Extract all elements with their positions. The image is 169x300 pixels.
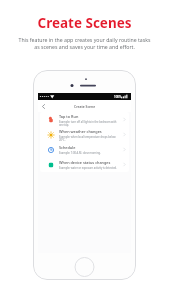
- staticText: Tap to Run: [59, 114, 79, 119]
- staticText: When device status changes: [59, 160, 111, 165]
- staticText: Create Scenes: [37, 14, 132, 32]
- button[interactable]: Schedule: [40, 142, 129, 157]
- staticText: Create Scene: [74, 104, 96, 109]
- staticText: 100%: [114, 95, 122, 99]
- staticText: Example: water or exposure activity is d…: [59, 166, 117, 170]
- button[interactable]: When device status changes: [40, 157, 129, 172]
- button[interactable]: When weather changes: [40, 127, 129, 142]
- staticText: Schedule: [59, 145, 76, 150]
- button[interactable]: Tap to Run: [40, 112, 129, 127]
- button[interactable]: Back: [39, 102, 48, 111]
- staticText: This feature in the app creates your dai…: [18, 36, 151, 50]
- staticText: Example: when local temperature drops be…: [59, 135, 116, 141]
- staticText: When weather changes: [59, 129, 102, 134]
- staticText: Example: 7:00 A.M. close morning.: [59, 151, 101, 155]
- staticText: Example: turn off all lights in the bedr…: [59, 120, 117, 126]
